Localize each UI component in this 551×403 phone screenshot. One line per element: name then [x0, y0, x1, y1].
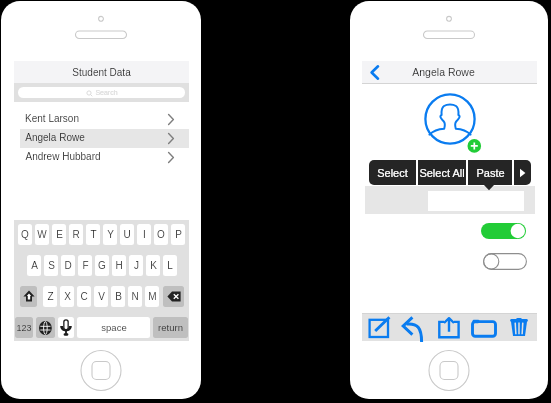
staticText: H	[115, 260, 123, 271]
staticText: K	[150, 260, 157, 271]
button[interactable]: return	[153, 317, 188, 338]
staticText: Search	[93, 89, 118, 97]
button[interactable]: W	[35, 224, 49, 245]
button[interactable]: Folder	[470, 314, 498, 341]
button[interactable]: Kent Larson	[14, 110, 189, 129]
button[interactable]: L	[163, 255, 177, 276]
button[interactable]: G	[95, 255, 109, 276]
staticText: I	[143, 229, 146, 240]
staticText: Paste	[476, 167, 505, 179]
button[interactable]: Setting disabled	[483, 253, 527, 270]
staticText: L	[167, 260, 173, 271]
staticText: D	[64, 260, 72, 271]
staticText: U	[123, 229, 131, 240]
staticText: Q	[21, 229, 29, 240]
button[interactable]: K	[146, 255, 160, 276]
button[interactable]: F	[78, 255, 92, 276]
button[interactable]: Select	[369, 160, 416, 185]
staticText: G	[98, 260, 106, 271]
staticText: F	[82, 260, 89, 271]
button[interactable]: H	[112, 255, 126, 276]
button[interactable]: V	[94, 286, 108, 307]
button[interactable]: Setting enabled	[481, 223, 526, 239]
button[interactable]: Angela Rowe	[14, 129, 189, 148]
button[interactable]: P	[171, 224, 185, 245]
button[interactable]: J	[129, 255, 143, 276]
button[interactable]: Q	[18, 224, 32, 245]
staticText: M	[148, 291, 157, 302]
button[interactable]: More	[514, 160, 531, 185]
button[interactable]: Select All	[418, 160, 466, 185]
button[interactable]: Switch keyboard	[36, 317, 55, 338]
button[interactable]: Dictate	[58, 317, 74, 338]
staticText: E	[56, 229, 63, 240]
staticText: O	[157, 229, 165, 240]
button[interactable]: Back	[366, 61, 384, 83]
button[interactable]: R	[69, 224, 83, 245]
staticText: Select All	[419, 167, 465, 179]
staticText: N	[131, 291, 139, 302]
button[interactable]: Backspace	[163, 286, 184, 307]
staticText: Andrew Hubbard	[25, 151, 101, 162]
button[interactable]: Delete	[505, 314, 533, 341]
button[interactable]: E	[52, 224, 66, 245]
staticText: W	[37, 229, 47, 240]
button[interactable]: A	[27, 255, 41, 276]
button[interactable]: Compose	[366, 314, 394, 341]
staticText: P	[175, 229, 182, 240]
staticText: S	[48, 260, 55, 271]
button[interactable]: M	[145, 286, 159, 307]
staticText: Z	[47, 291, 54, 302]
staticText: 123	[16, 323, 32, 333]
staticText: J	[134, 260, 139, 271]
button[interactable]: Reply	[400, 314, 428, 341]
staticText: A	[31, 260, 38, 271]
button[interactable]: U	[120, 224, 134, 245]
staticText: R	[72, 229, 80, 240]
button[interactable]: space	[77, 317, 150, 338]
button[interactable]: D	[61, 255, 75, 276]
staticText: Select	[377, 167, 408, 179]
staticText: C	[80, 291, 88, 302]
staticText: Kent Larson	[25, 113, 79, 124]
staticText: T	[90, 229, 97, 240]
button[interactable]: N	[128, 286, 142, 307]
staticText: Angela Rowe	[412, 66, 475, 78]
button[interactable]: Search	[18, 87, 185, 98]
button[interactable]: 123	[15, 317, 33, 338]
staticText: Angela Rowe	[25, 132, 85, 143]
button[interactable]: Andrew Hubbard	[14, 148, 189, 167]
staticText: return	[158, 322, 183, 333]
staticText: space	[101, 322, 127, 333]
staticText: X	[64, 291, 71, 302]
staticText: V	[98, 291, 105, 302]
button[interactable]: Paste	[468, 160, 512, 185]
button[interactable]: S	[44, 255, 58, 276]
button[interactable]: T	[86, 224, 100, 245]
button[interactable]: Z	[43, 286, 57, 307]
button[interactable]: C	[77, 286, 91, 307]
button[interactable]: X	[60, 286, 74, 307]
button[interactable]: Y	[103, 224, 117, 245]
staticText: Y	[107, 229, 114, 240]
staticText: Student Data	[72, 67, 131, 78]
button[interactable]: Shift	[20, 286, 37, 307]
staticText: B	[115, 291, 122, 302]
button[interactable]: Share	[435, 314, 463, 341]
button[interactable]: I	[137, 224, 151, 245]
button[interactable]: B	[111, 286, 125, 307]
button[interactable]: O	[154, 224, 168, 245]
